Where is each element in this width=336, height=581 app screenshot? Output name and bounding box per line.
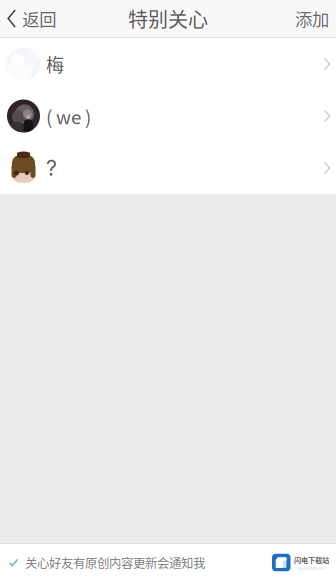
- staticText: 梅: [46, 51, 64, 77]
- button[interactable]: ?: [0, 142, 336, 194]
- button[interactable]: 返回: [0, 0, 66, 37]
- button[interactable]: ( we ): [0, 90, 336, 142]
- staticText: 返回: [22, 6, 56, 31]
- button[interactable]: 添加: [283, 0, 336, 37]
- button[interactable]: 梅: [0, 38, 336, 90]
- staticText: 闪电下载站: [294, 555, 329, 565]
- staticText: 特别关心: [128, 4, 208, 33]
- staticText: www.sdbeta.com: [297, 566, 325, 570]
- staticText: 添加: [295, 6, 329, 31]
- staticText: ?: [46, 155, 57, 181]
- staticText: ( we ): [46, 102, 91, 129]
- staticText: 关心好友有原创内容更新会通知我: [25, 553, 205, 571]
